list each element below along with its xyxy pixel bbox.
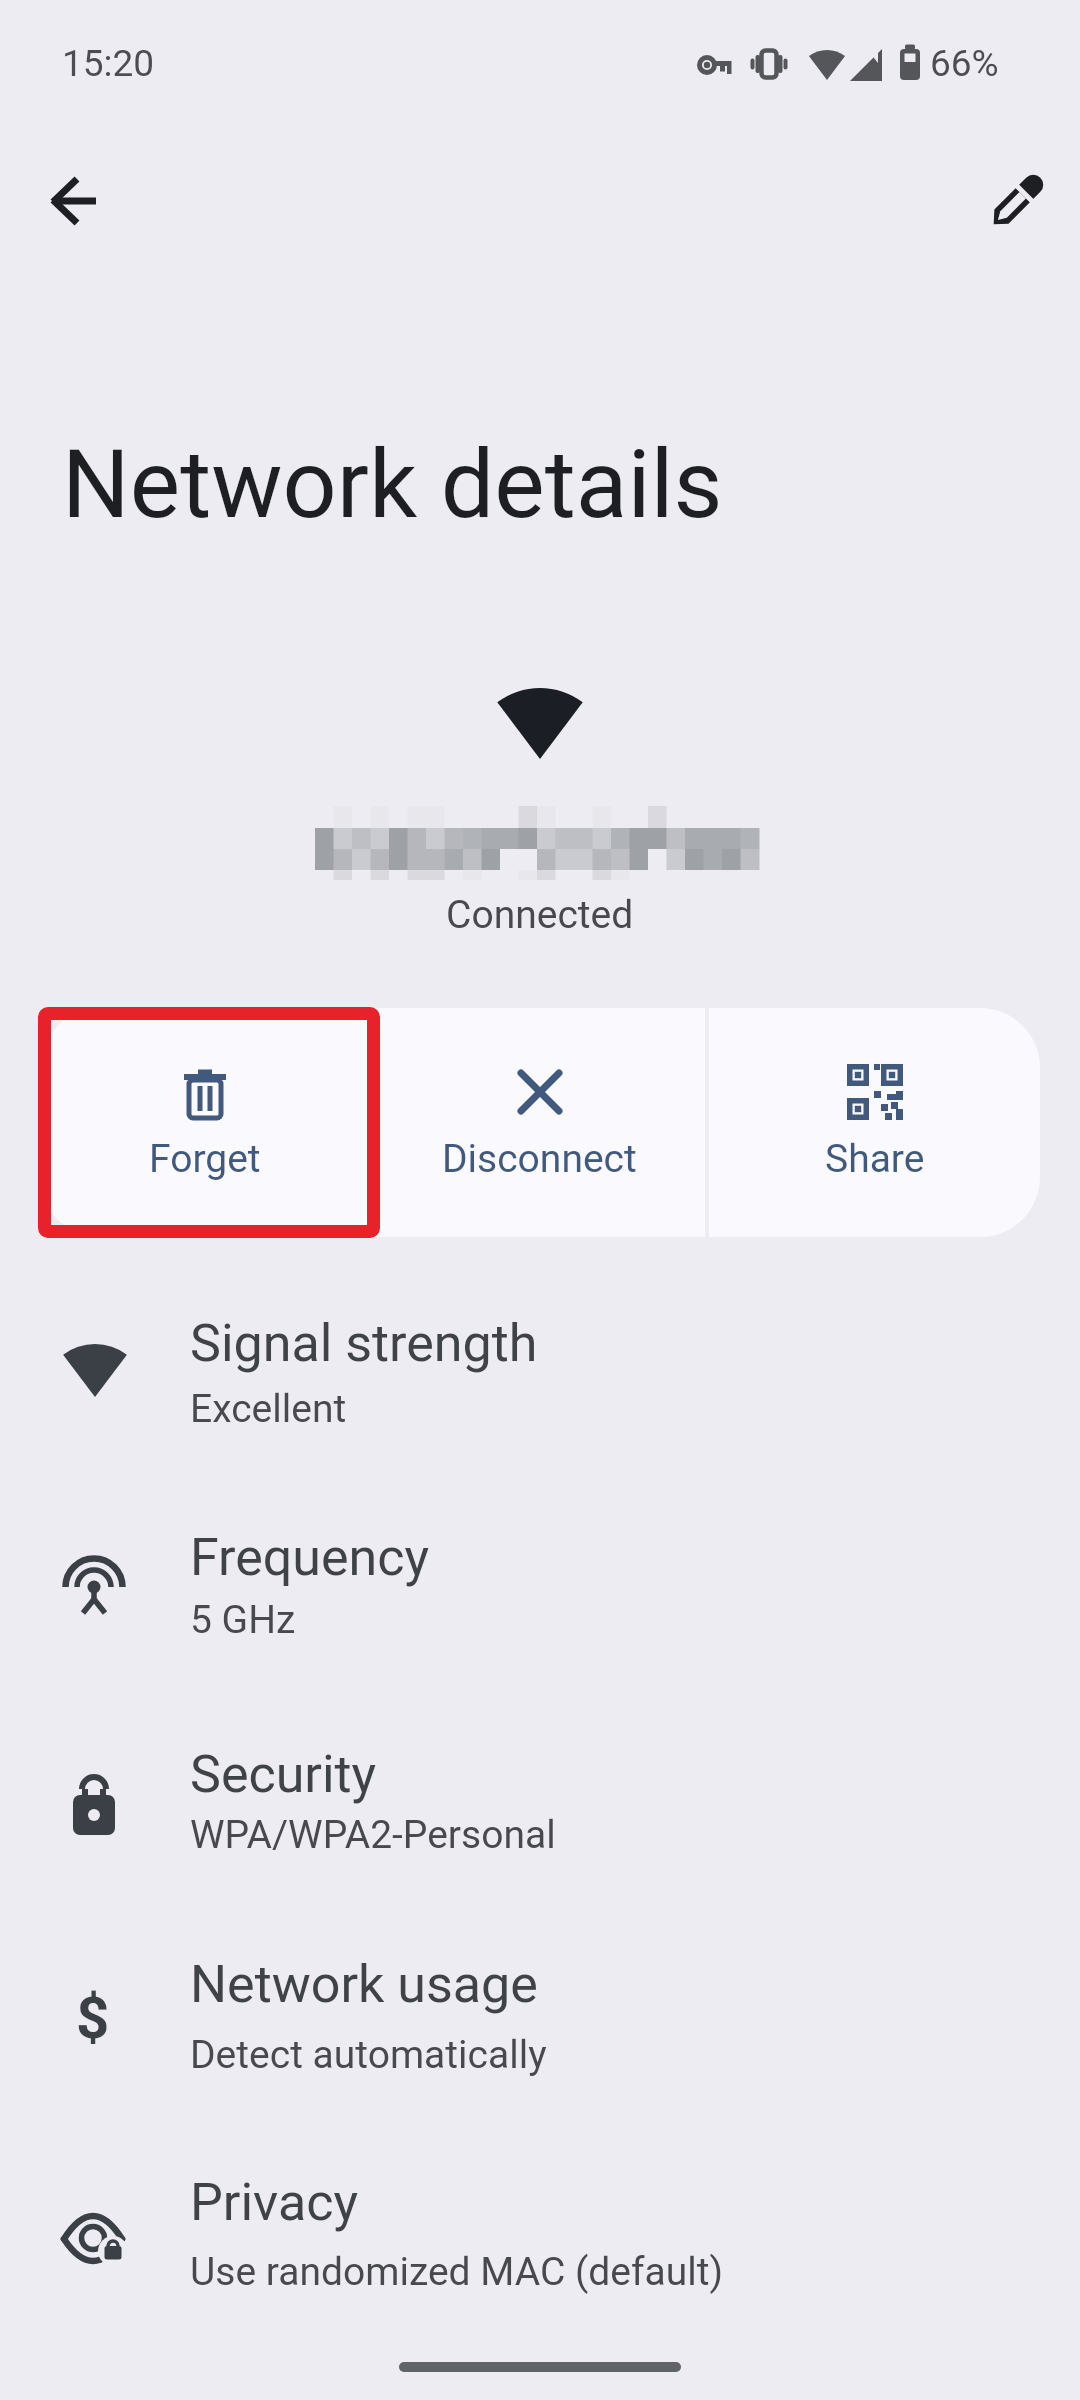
staticText: Detect automatically xyxy=(190,2032,547,2078)
staticText: Signal strength xyxy=(190,1313,538,1374)
staticText: 66% xyxy=(930,42,999,85)
button[interactable]: Share xyxy=(709,1008,1040,1237)
staticText: Forget xyxy=(149,1136,261,1182)
button[interactable]: Disconnect xyxy=(374,1008,705,1237)
staticText: WPA/WPA2-Personal xyxy=(190,1812,556,1858)
staticText: Security xyxy=(190,1744,377,1805)
staticText: 5 GHz xyxy=(190,1597,296,1643)
button[interactable] xyxy=(976,160,1058,242)
staticText: 15:20 xyxy=(62,42,155,85)
staticText: Use randomized MAC (default) xyxy=(190,2249,724,2295)
staticText: Network usage xyxy=(190,1954,538,2015)
staticText: $ xyxy=(76,1984,110,2052)
staticText: Network details xyxy=(62,429,723,540)
button[interactable]: Signal strength xyxy=(0,1264,1080,1476)
staticText: Excellent xyxy=(190,1386,347,1432)
staticText: Privacy xyxy=(190,2172,358,2233)
button[interactable] xyxy=(34,160,116,242)
staticText: Frequency xyxy=(190,1527,430,1588)
button[interactable]: Forget xyxy=(40,1008,370,1237)
staticText: Share xyxy=(825,1136,925,1182)
staticText: Disconnect xyxy=(442,1136,637,1182)
button[interactable]: Security xyxy=(0,1695,1080,1907)
button[interactable]: Privacy xyxy=(0,2123,1080,2335)
staticText: Connected xyxy=(446,892,634,938)
button[interactable]: Network usage xyxy=(0,1905,1080,2117)
button[interactable]: Frequency xyxy=(0,1478,1080,1690)
